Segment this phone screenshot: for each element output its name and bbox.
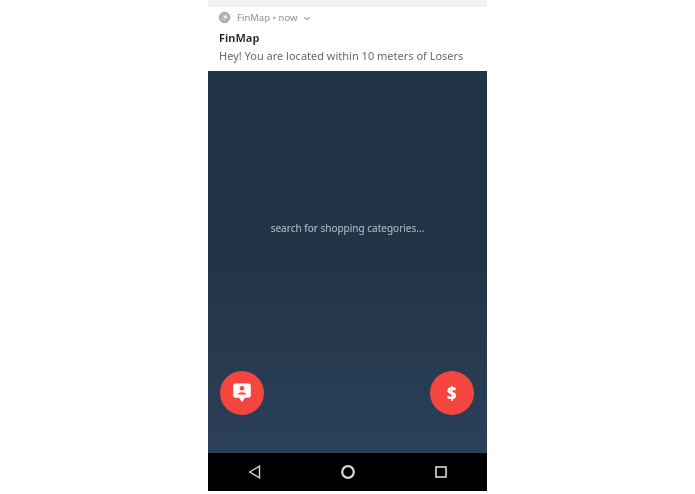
button[interactable]: FinMap • now xyxy=(208,7,487,28)
staticText: $ xyxy=(447,382,457,405)
button[interactable]: Home xyxy=(301,453,394,491)
staticText: search for shopping categories... xyxy=(208,221,487,235)
button[interactable]: Prices xyxy=(430,371,474,415)
staticText: FinMap xyxy=(219,30,260,45)
button[interactable]: Recents xyxy=(394,453,487,491)
button[interactable]: Back xyxy=(208,453,301,491)
staticText: FinMap • now xyxy=(237,11,298,24)
staticText: Hey! You are located within 10 meters of… xyxy=(219,48,483,63)
button[interactable]: Nearby places xyxy=(220,371,264,415)
